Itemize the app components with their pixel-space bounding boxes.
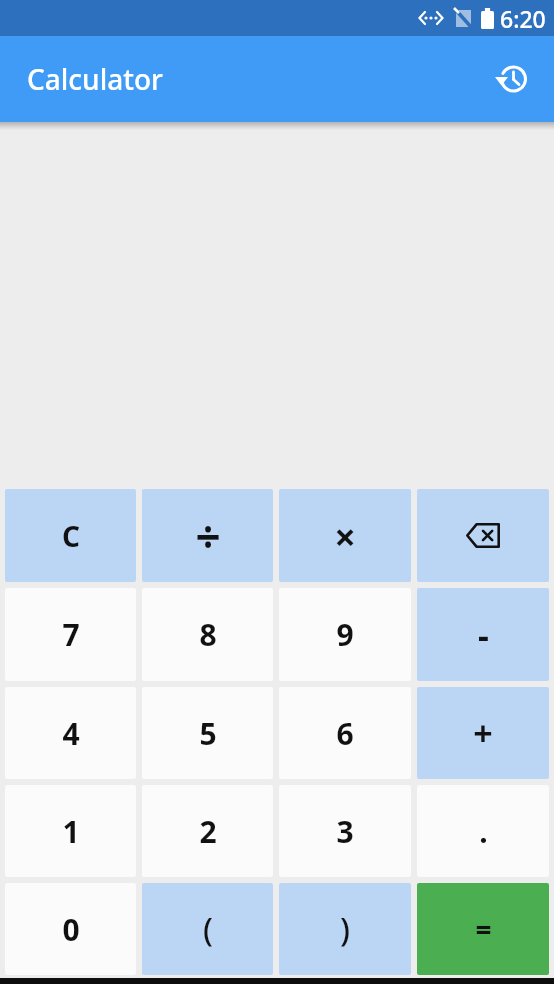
button[interactable]: 5	[142, 687, 273, 779]
button[interactable]: =	[417, 883, 549, 975]
button[interactable]: +	[417, 687, 549, 779]
staticText: -	[478, 612, 489, 658]
staticText: 7	[62, 614, 80, 655]
staticText: =	[475, 910, 492, 948]
button[interactable]: 2	[142, 785, 273, 877]
button[interactable]: -	[417, 588, 549, 681]
button[interactable]: ×	[279, 489, 411, 582]
button[interactable]: 9	[279, 588, 411, 681]
staticText: 5	[199, 713, 217, 754]
staticText: .	[479, 811, 488, 852]
button[interactable]	[417, 489, 549, 582]
button[interactable]: 6	[279, 687, 411, 779]
button[interactable]: 1	[5, 785, 136, 877]
button[interactable]: C	[5, 489, 136, 582]
button[interactable]: (	[142, 883, 273, 975]
button[interactable]: 3	[279, 785, 411, 877]
staticText: 2	[199, 811, 217, 852]
button[interactable]: )	[279, 883, 411, 975]
staticText: (	[203, 907, 213, 951]
button[interactable]	[492, 59, 532, 99]
staticText: )	[340, 907, 350, 951]
button[interactable]: 7	[5, 588, 136, 681]
button[interactable]: 4	[5, 687, 136, 779]
staticText: 6	[336, 713, 354, 754]
staticText: ÷	[195, 506, 221, 566]
button[interactable]: .	[417, 785, 549, 877]
button[interactable]: 8	[142, 588, 273, 681]
staticText: 6:20	[500, 3, 546, 34]
staticText: 3	[336, 811, 354, 852]
staticText: C	[62, 517, 80, 555]
staticText: ×	[334, 510, 356, 562]
staticText: 8	[199, 614, 217, 655]
staticText: 0	[62, 909, 80, 950]
staticText: +	[473, 710, 493, 756]
staticText: 9	[336, 614, 354, 655]
staticText: Calculator	[27, 60, 163, 98]
button[interactable]: 0	[5, 883, 136, 975]
button[interactable]: ÷	[142, 489, 273, 582]
staticText: 1	[62, 811, 80, 852]
staticText: 4	[62, 713, 80, 754]
